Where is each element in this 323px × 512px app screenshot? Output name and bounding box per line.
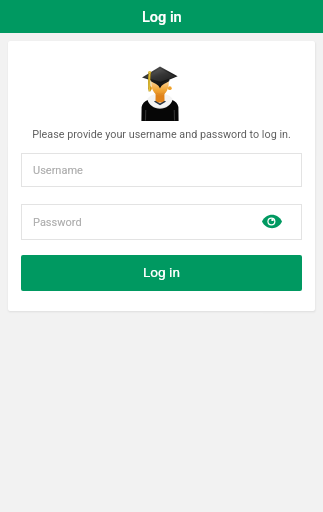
staticText: Log in (143, 264, 180, 280)
staticText: Password (33, 216, 82, 229)
button[interactable]: Username (21, 153, 302, 187)
staticText: Log in (142, 9, 182, 26)
button[interactable]: Log in (21, 255, 302, 291)
staticText: Please provide your username and passwor… (18, 128, 305, 141)
staticText: Username (33, 164, 83, 177)
button[interactable]: Password (21, 204, 302, 240)
button[interactable]: Show password (260, 210, 284, 234)
